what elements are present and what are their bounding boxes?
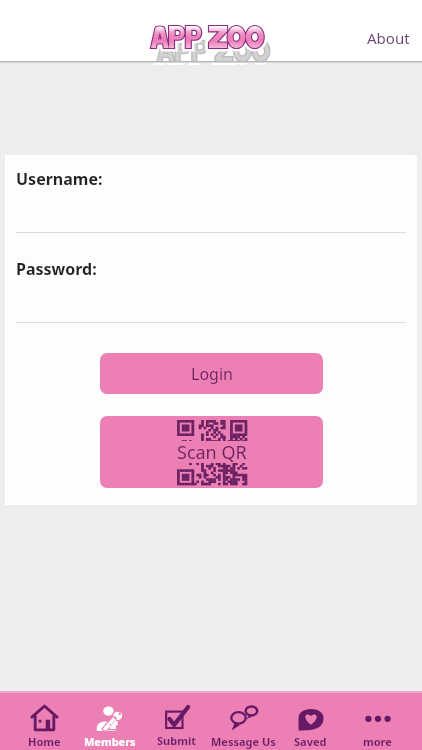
- staticText: Saved: [294, 734, 327, 749]
- staticText: Login: [191, 363, 233, 385]
- button[interactable]: Home: [11, 693, 77, 750]
- staticText: Submit: [157, 733, 196, 748]
- button[interactable]: Login: [100, 353, 323, 394]
- button[interactable]: Members: [77, 693, 143, 750]
- staticText: Message Us: [211, 734, 276, 749]
- button[interactable]: more: [344, 693, 411, 750]
- staticText: Home: [28, 734, 61, 749]
- staticText: more: [363, 734, 392, 749]
- button[interactable]: About: [361, 24, 416, 52]
- button[interactable]: Scan QR: [100, 416, 323, 488]
- staticText: About: [367, 28, 410, 48]
- button[interactable]: Message Us: [210, 693, 277, 750]
- staticText: Members: [84, 734, 136, 749]
- button[interactable]: Submit: [143, 693, 210, 750]
- button[interactable]: Saved: [277, 693, 344, 750]
- staticText: Scan QR: [177, 440, 247, 465]
- staticText: Username:: [16, 168, 103, 190]
- staticText: Password:: [16, 258, 97, 280]
